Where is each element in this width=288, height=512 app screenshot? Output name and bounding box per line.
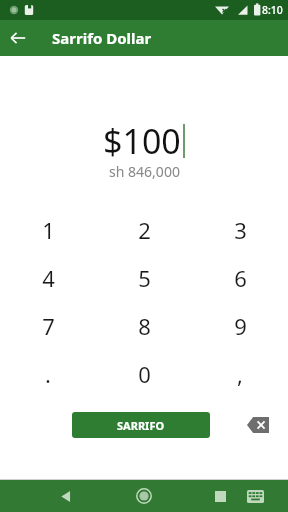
button[interactable]: Back bbox=[0, 20, 36, 56]
staticText: 8:10 bbox=[262, 3, 283, 17]
staticText: 6 bbox=[234, 263, 247, 293]
button[interactable]: 2 bbox=[96, 206, 192, 254]
staticText: Sarrifo Dollar bbox=[52, 28, 152, 48]
staticText: 3 bbox=[234, 215, 247, 245]
button[interactable]: 8 bbox=[96, 302, 192, 350]
staticText: 5 bbox=[138, 263, 151, 293]
staticText: . bbox=[45, 359, 51, 389]
button[interactable]: 5 bbox=[96, 254, 192, 302]
button[interactable]: Home bbox=[128, 480, 160, 512]
staticText: 4 bbox=[42, 263, 55, 293]
staticText: 2 bbox=[138, 215, 151, 245]
button[interactable]: Recent apps bbox=[206, 482, 234, 510]
button[interactable]: . bbox=[0, 350, 96, 398]
button[interactable]: 3 bbox=[192, 206, 288, 254]
button[interactable]: 6 bbox=[192, 254, 288, 302]
staticText: , bbox=[237, 359, 243, 389]
staticText: 8 bbox=[138, 311, 151, 341]
button[interactable]: Delete bbox=[243, 412, 273, 438]
button[interactable]: 1 bbox=[0, 206, 96, 254]
button[interactable]: , bbox=[192, 350, 288, 398]
button[interactable]: 0 bbox=[96, 350, 192, 398]
button[interactable]: 4 bbox=[0, 254, 96, 302]
button[interactable]: SARRIFO bbox=[72, 412, 210, 438]
staticText: sh 846,000 bbox=[109, 162, 180, 181]
button[interactable]: Keyboard bbox=[240, 481, 270, 511]
button[interactable]: Back bbox=[50, 481, 80, 511]
staticText: 9 bbox=[234, 311, 247, 341]
staticText: SARRIFO bbox=[117, 418, 165, 433]
staticText: 1 bbox=[42, 215, 55, 245]
button[interactable]: 7 bbox=[0, 302, 96, 350]
button[interactable]: 9 bbox=[192, 302, 288, 350]
staticText: 0 bbox=[138, 359, 151, 389]
staticText: $100 bbox=[103, 118, 181, 164]
staticText: 7 bbox=[42, 311, 55, 341]
